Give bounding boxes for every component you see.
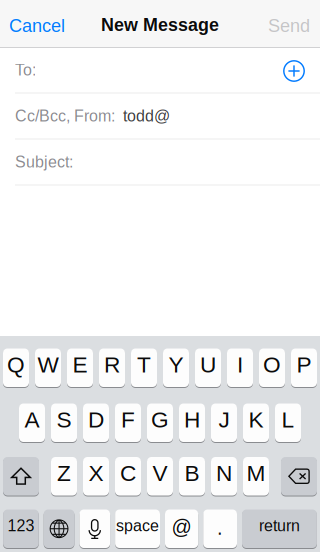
- staticText: L: [281, 407, 294, 432]
- staticText: E: [72, 352, 87, 377]
- button[interactable]: T: [131, 348, 157, 387]
- staticText: Q: [7, 352, 25, 377]
- button[interactable]: Add Contact: [283, 59, 305, 81]
- button[interactable]: Z: [51, 456, 77, 496]
- staticText: O: [263, 352, 281, 377]
- button[interactable]: K: [243, 403, 269, 442]
- staticText: Y: [168, 352, 183, 377]
- button[interactable]: Next Keyboard: [44, 509, 74, 548]
- staticText: J: [218, 407, 229, 432]
- staticText: Cc/Bcc, From:: [15, 107, 115, 125]
- button[interactable]: J: [211, 403, 237, 442]
- button[interactable]: Send: [252, 0, 320, 47]
- button[interactable]: Shift: [3, 456, 39, 496]
- staticText: Cancel: [9, 16, 65, 36]
- button[interactable]: M: [243, 456, 269, 496]
- button[interactable]: Q: [3, 348, 29, 387]
- button[interactable]: P: [291, 348, 317, 387]
- button[interactable]: F: [115, 403, 141, 442]
- button[interactable]: L: [275, 403, 301, 442]
- staticText: H: [184, 407, 200, 432]
- staticText: N: [216, 461, 232, 486]
- button[interactable]: G: [147, 403, 173, 442]
- staticText: X: [88, 461, 103, 486]
- button[interactable]: H: [179, 403, 205, 442]
- button[interactable]: Cancel: [0, 0, 81, 47]
- button[interactable]: I: [227, 348, 253, 387]
- staticText: S: [56, 407, 71, 432]
- button[interactable]: B: [179, 456, 205, 496]
- staticText: K: [248, 407, 263, 432]
- staticText: M: [246, 461, 265, 486]
- staticText: Subject:: [15, 153, 73, 171]
- staticText: A: [24, 407, 39, 432]
- button[interactable]: Dictate: [79, 509, 110, 548]
- button[interactable]: S: [51, 403, 77, 442]
- staticText: I: [237, 352, 243, 377]
- button[interactable]: D: [83, 403, 109, 442]
- staticText: C: [120, 461, 136, 486]
- staticText: space: [116, 517, 159, 535]
- button[interactable]: R: [99, 348, 125, 387]
- staticText: Send: [268, 16, 310, 36]
- button[interactable]: U: [195, 348, 221, 387]
- staticText: F: [121, 407, 135, 432]
- button[interactable]: space: [115, 509, 160, 548]
- staticText: P: [296, 352, 311, 377]
- button[interactable]: Delete: [281, 456, 317, 496]
- staticText: D: [88, 407, 104, 432]
- button[interactable]: E: [67, 348, 93, 387]
- staticText: R: [104, 352, 120, 377]
- staticText: return: [259, 517, 300, 535]
- staticText: U: [200, 352, 216, 377]
- staticText: B: [184, 461, 199, 486]
- staticText: G: [151, 407, 169, 432]
- staticText: .: [217, 517, 223, 539]
- staticText: Z: [57, 461, 71, 486]
- button[interactable]: O: [259, 348, 285, 387]
- button[interactable]: C: [115, 456, 141, 496]
- button[interactable]: 123: [3, 509, 39, 548]
- button[interactable]: Y: [163, 348, 189, 387]
- staticText: 123: [7, 517, 34, 535]
- staticText: todd@: [115, 107, 170, 125]
- button[interactable]: .: [203, 509, 237, 548]
- button[interactable]: V: [147, 456, 173, 496]
- button[interactable]: return: [242, 509, 317, 548]
- staticText: W: [37, 352, 58, 377]
- staticText: V: [152, 461, 167, 486]
- staticText: T: [137, 352, 151, 377]
- button[interactable]: X: [83, 456, 109, 496]
- button[interactable]: A: [19, 403, 45, 442]
- button[interactable]: W: [35, 348, 61, 387]
- button[interactable]: @: [165, 509, 198, 548]
- button[interactable]: N: [211, 456, 237, 496]
- staticText: To:: [15, 61, 36, 79]
- staticText: New Message: [101, 15, 219, 35]
- staticText: @: [172, 516, 192, 538]
